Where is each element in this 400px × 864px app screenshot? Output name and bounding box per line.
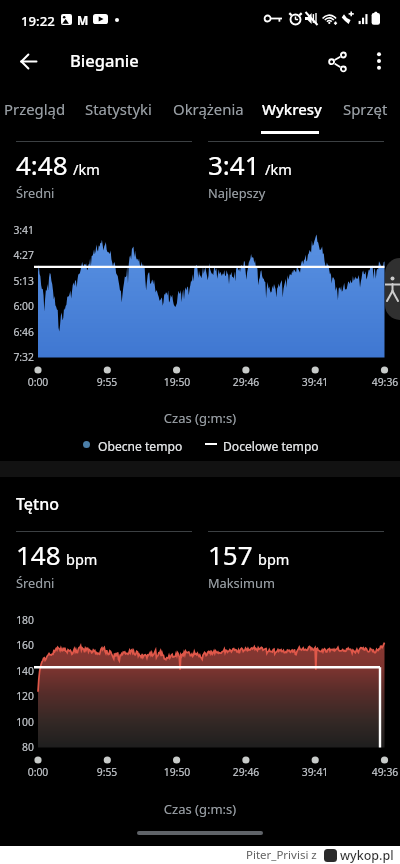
staticText: /km — [73, 159, 100, 179]
staticText: 3:41 — [208, 147, 260, 182]
staticText: 4:27 — [0, 248, 34, 262]
button[interactable]: Przegląd — [0, 88, 74, 130]
staticText: 4:48 — [16, 147, 68, 182]
staticText: Docelowe tempo — [223, 438, 319, 454]
staticText: 0:00 — [14, 375, 62, 389]
button[interactable]: Back — [4, 37, 52, 85]
staticText: 160 — [0, 638, 34, 652]
staticText: 7:32 — [0, 350, 34, 364]
staticText: 80 — [0, 740, 34, 754]
staticText: 19:50 — [153, 765, 201, 779]
staticText: Wykresy — [262, 99, 322, 119]
staticText: 49:36 — [361, 375, 400, 389]
staticText: Najlepszy — [208, 184, 266, 201]
staticText: 140 — [0, 664, 34, 678]
button[interactable]: More options — [355, 37, 400, 85]
button[interactable]: Okrążenia — [164, 88, 253, 130]
staticText: 19:22 — [21, 12, 55, 30]
staticText: Średni — [16, 184, 55, 201]
staticText: bpm — [66, 549, 98, 569]
button[interactable]: Sprzęt — [335, 88, 396, 130]
staticText: Piter_Privisi z — [246, 847, 317, 863]
staticText: 6:46 — [0, 325, 34, 339]
staticText: Czas (g:m:s) — [0, 800, 400, 818]
staticText: bpm — [258, 549, 290, 569]
staticText: 120 — [0, 689, 34, 703]
staticText: 0:00 — [14, 765, 62, 779]
staticText: 180 — [0, 613, 34, 627]
staticText: 49:36 — [361, 765, 400, 779]
staticText: 3:41 — [0, 223, 34, 237]
staticText: 29:46 — [222, 765, 270, 779]
staticText: Bieganie — [70, 49, 139, 71]
staticText: wykop.pl — [340, 847, 394, 864]
staticText: 9:55 — [83, 765, 131, 779]
button[interactable]: Share — [314, 37, 362, 85]
staticText: Średni — [16, 574, 55, 591]
staticText: M — [77, 12, 89, 28]
staticText: 9:55 — [83, 375, 131, 389]
staticText: 100 — [0, 715, 34, 729]
staticText: 39:41 — [291, 765, 339, 779]
staticText: /km — [265, 159, 292, 179]
staticText: 29:46 — [222, 375, 270, 389]
staticText: 39:41 — [291, 375, 339, 389]
staticText: Tętno — [16, 493, 59, 515]
staticText: 19:50 — [153, 375, 201, 389]
staticText: 148 — [16, 537, 61, 572]
staticText: Obecne tempo — [98, 438, 183, 454]
staticText: 6:00 — [0, 299, 34, 313]
staticText: Statystyki — [85, 99, 152, 119]
staticText: Sprzęt — [343, 99, 388, 119]
button[interactable]: Accessibility menu — [385, 258, 400, 320]
staticText: Maksimum — [208, 574, 275, 591]
staticText: Okrążenia — [173, 99, 244, 119]
staticText: 157 — [208, 537, 253, 572]
button[interactable]: Wykresy — [254, 88, 329, 130]
button[interactable]: Statystyki — [74, 88, 162, 130]
staticText: 5:13 — [0, 274, 34, 288]
staticText: Czas (g:m:s) — [0, 409, 400, 427]
staticText: Przegląd — [4, 99, 66, 119]
